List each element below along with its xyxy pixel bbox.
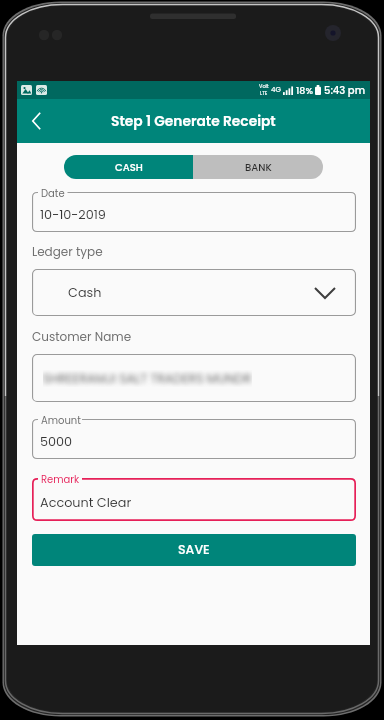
staticText: Customer Name	[32, 328, 132, 345]
staticText: CASH	[115, 160, 143, 174]
staticText: Account Clear	[40, 494, 132, 512]
staticText: Remark	[41, 472, 80, 486]
staticText: LTE	[260, 90, 268, 97]
other: Open ledger type list	[312, 280, 338, 306]
staticText: Cash	[68, 284, 102, 302]
staticText: 10-10-2019	[40, 206, 106, 224]
staticText: 18%	[296, 84, 313, 97]
button[interactable]: Remark	[32, 478, 356, 521]
staticText: Ledger type	[32, 243, 103, 260]
button[interactable]: CASH	[64, 155, 193, 179]
button[interactable]: Amount	[32, 419, 356, 459]
button[interactable]: SAVE	[32, 534, 356, 566]
button[interactable]: SHREERAMJI SALT TRADERS MUNDR	[32, 354, 356, 402]
staticText: 5000	[40, 433, 73, 451]
staticText: 4G	[271, 85, 281, 95]
staticText: SHREERAMJI SALT TRADERS MUNDR	[43, 370, 252, 387]
staticText: SAVE	[178, 541, 210, 559]
button[interactable]: Date	[32, 192, 356, 232]
staticText: 5:43 pm	[324, 83, 366, 97]
staticText: Volt	[259, 83, 269, 90]
staticText: Amount	[41, 413, 81, 427]
staticText: Step 1 Generate Receipt	[111, 112, 276, 131]
button[interactable]: Back	[16, 101, 56, 141]
staticText: Date	[41, 186, 65, 200]
button[interactable]: Cash	[32, 269, 356, 316]
button[interactable]: BANK	[193, 155, 323, 179]
staticText: BANK	[245, 160, 272, 174]
